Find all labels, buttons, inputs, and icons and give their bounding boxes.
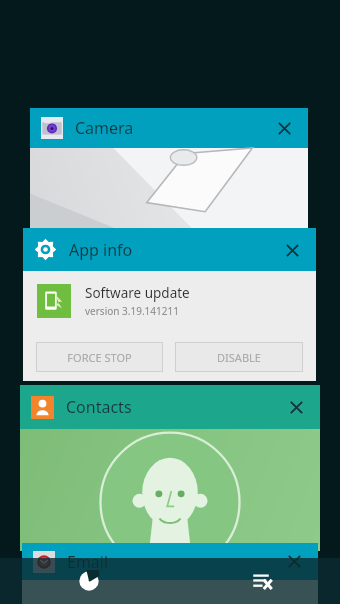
button[interactable]: DISABLE <box>175 342 303 372</box>
button[interactable]: Close App info <box>272 230 312 270</box>
button[interactable]: Close Camera <box>264 108 304 148</box>
staticText: Email <box>67 551 109 573</box>
staticText: Software update <box>85 284 190 302</box>
button[interactable]: Contacts <box>20 385 320 429</box>
button[interactable]: Email <box>22 543 318 604</box>
staticText: version 3.19.141211 <box>85 304 179 318</box>
button[interactable]: App info <box>23 228 316 381</box>
button[interactable]: FORCE STOP <box>36 342 163 372</box>
staticText: Camera <box>75 117 134 139</box>
button[interactable]: Camera <box>30 108 308 239</box>
staticText: App info <box>69 239 133 261</box>
button[interactable]: App info <box>23 228 316 271</box>
staticText: FORCE STOP <box>67 350 132 365</box>
button[interactable]: Close Email <box>274 543 314 580</box>
button[interactable]: Camera <box>30 108 308 148</box>
button[interactable]: Close Contacts <box>276 387 316 427</box>
button[interactable]: Contacts <box>20 385 320 551</box>
staticText: Contacts <box>66 396 132 418</box>
button[interactable]: Close all <box>239 558 285 604</box>
staticText: DISABLE <box>217 350 261 365</box>
button[interactable]: Email <box>22 543 318 580</box>
button[interactable]: Task manager <box>66 558 112 604</box>
